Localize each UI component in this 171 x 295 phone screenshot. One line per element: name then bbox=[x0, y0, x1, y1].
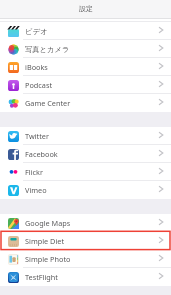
staticText: Simple Diet bbox=[25, 236, 65, 246]
staticText: Podcast bbox=[25, 80, 53, 90]
staticText: Simple Photo bbox=[25, 254, 71, 264]
button[interactable]: 写真とカメラ bbox=[0, 40, 171, 58]
staticText: iBooks bbox=[25, 62, 48, 72]
button[interactable]: Flickr bbox=[0, 163, 171, 181]
button[interactable]: Google Maps bbox=[0, 214, 171, 232]
staticText: Facebook bbox=[25, 149, 58, 159]
button[interactable]: Podcast bbox=[0, 76, 171, 94]
staticText: Flickr bbox=[25, 167, 43, 177]
button[interactable]: ビデオ bbox=[0, 22, 171, 40]
staticText: 写真とカメラ bbox=[25, 45, 70, 54]
staticText: Vimeo bbox=[25, 185, 47, 195]
staticText: ビデオ bbox=[25, 27, 48, 36]
button[interactable]: TestFlight bbox=[0, 268, 171, 286]
button[interactable]: Twitter bbox=[0, 127, 171, 145]
button[interactable]: Simple Diet bbox=[0, 232, 171, 250]
button[interactable]: Game Center bbox=[0, 94, 171, 112]
staticText: Google Maps bbox=[25, 218, 71, 228]
staticText: Game Center bbox=[25, 98, 71, 108]
staticText: 設定 bbox=[79, 4, 93, 13]
button[interactable]: Vimeo bbox=[0, 181, 171, 199]
staticText: TestFlight bbox=[25, 272, 58, 282]
button[interactable]: Simple Photo bbox=[0, 250, 171, 268]
button[interactable]: Facebook bbox=[0, 145, 171, 163]
staticText: Twitter bbox=[25, 131, 49, 141]
button[interactable]: iBooks bbox=[0, 58, 171, 76]
